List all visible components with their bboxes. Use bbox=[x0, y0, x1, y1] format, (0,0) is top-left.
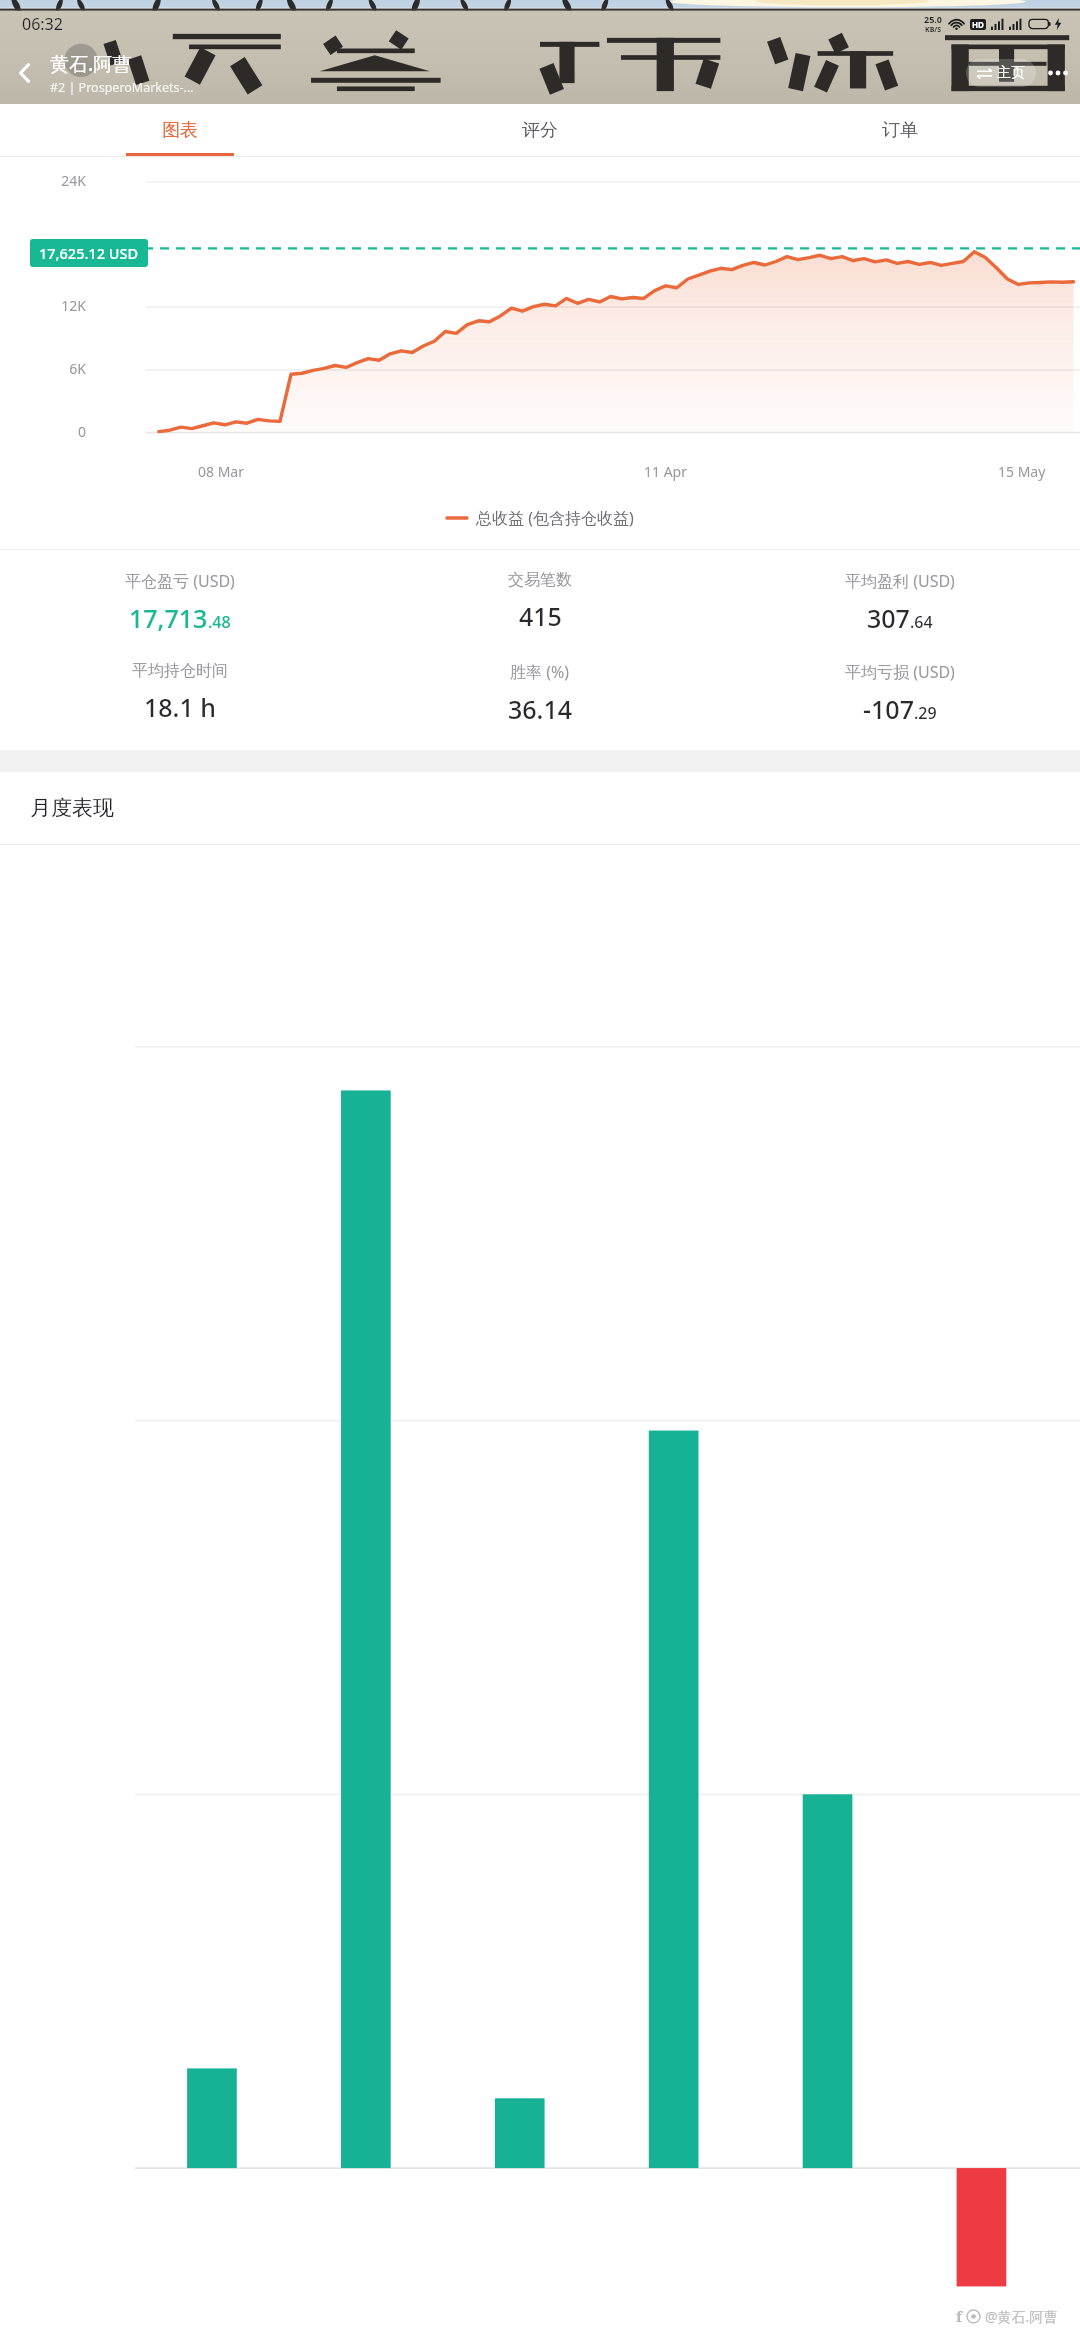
staticText: 17,713 bbox=[129, 601, 208, 635]
button[interactable]: 平均持仓时间 bbox=[0, 661, 360, 724]
staticText: 交易笔数 bbox=[508, 570, 572, 590]
staticText: @黄石.阿曹 bbox=[985, 2307, 1058, 2326]
button[interactable]: 总收益 (包含持仓收益) bbox=[0, 487, 1080, 549]
button[interactable]: 胜率 (%) bbox=[360, 661, 720, 726]
staticText: 36.14 bbox=[508, 692, 573, 726]
button[interactable]: More options bbox=[1036, 48, 1080, 98]
staticText: -107 bbox=[863, 692, 914, 726]
staticText: 图表 bbox=[162, 119, 198, 142]
staticText: 08 Mar bbox=[198, 462, 244, 481]
staticText: 24K bbox=[28, 171, 86, 190]
staticText: 评分 bbox=[522, 119, 558, 142]
button[interactable]: 评分 bbox=[360, 104, 720, 156]
staticText: 11 Apr bbox=[644, 462, 687, 481]
staticText: 订单 bbox=[882, 119, 918, 142]
staticText: f bbox=[956, 2306, 963, 2326]
staticText: 总收益 (包含持仓收益) bbox=[476, 507, 634, 529]
staticText: 主页 bbox=[997, 64, 1025, 82]
button[interactable]: 平均亏损 (USD) bbox=[720, 661, 1080, 726]
staticText: 17,625.12 USD bbox=[39, 243, 139, 263]
staticText: 月度表现 bbox=[30, 795, 114, 821]
button[interactable]: 平仓盈亏 (USD) bbox=[0, 570, 360, 635]
staticText: 黄石.阿曹 bbox=[50, 51, 132, 77]
staticText: 平均持仓时间 bbox=[132, 661, 228, 681]
staticText: 平均亏损 (USD) bbox=[845, 661, 955, 683]
staticText: .29 bbox=[914, 702, 937, 724]
staticText: 06:32 bbox=[22, 13, 63, 35]
button[interactable]: Back bbox=[0, 48, 50, 98]
staticText: HD bbox=[972, 19, 984, 30]
staticText: 0 bbox=[28, 422, 86, 441]
staticText: 307 bbox=[867, 601, 910, 635]
staticText: 平仓盈亏 (USD) bbox=[125, 570, 235, 592]
staticText: 415 bbox=[519, 599, 562, 633]
staticText: 18.1 h bbox=[144, 690, 216, 724]
staticText: 胜率 (%) bbox=[510, 661, 570, 683]
button[interactable]: 交易笔数 bbox=[360, 570, 720, 633]
button[interactable]: 主页 bbox=[966, 59, 1036, 87]
staticText: 25.0 bbox=[924, 13, 942, 25]
button[interactable]: 平均盈利 (USD) bbox=[720, 570, 1080, 635]
staticText: 6K bbox=[28, 359, 86, 378]
staticText: #2 | ProsperoMarkets-... bbox=[50, 79, 194, 96]
staticText: 平均盈利 (USD) bbox=[845, 570, 955, 592]
staticText: .48 bbox=[208, 611, 231, 633]
staticText: KB/S bbox=[925, 25, 942, 35]
button[interactable]: 图表 bbox=[0, 104, 360, 156]
staticText: 15 May bbox=[998, 462, 1046, 481]
staticText: 12K bbox=[28, 296, 86, 315]
button[interactable]: 订单 bbox=[720, 104, 1080, 156]
staticText: .64 bbox=[910, 611, 933, 633]
